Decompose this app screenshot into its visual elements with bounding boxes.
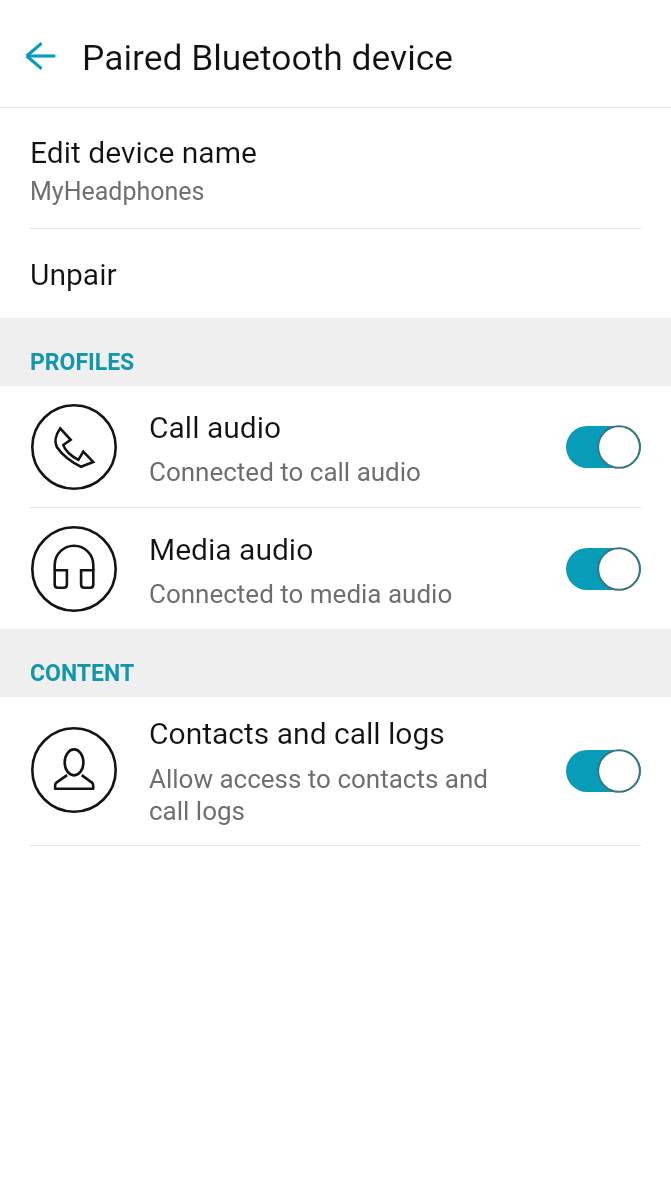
staticText: Contacts and call logs xyxy=(149,716,445,751)
staticText: CONTENT xyxy=(30,660,135,687)
staticText: Allow access to contacts and call logs xyxy=(149,764,499,827)
staticText: Connected to call audio xyxy=(149,457,609,487)
button[interactable]: Media audio xyxy=(0,508,671,629)
staticText: Connected to media audio xyxy=(149,579,609,609)
button[interactable]: Toggle setting xyxy=(566,425,641,469)
button[interactable]: Call audio xyxy=(0,386,671,507)
staticText: Edit device name xyxy=(30,135,257,170)
button[interactable]: Contacts and call logs xyxy=(0,697,671,845)
staticText: MyHeadphones xyxy=(30,177,205,206)
staticText: PROFILES xyxy=(30,349,135,376)
button[interactable]: Unpair xyxy=(0,229,671,318)
staticText: Media audio xyxy=(149,532,314,567)
staticText: Call audio xyxy=(149,410,282,445)
button[interactable]: Toggle setting xyxy=(566,749,641,793)
staticText: Paired Bluetooth device xyxy=(82,37,454,78)
button[interactable]: Edit device name xyxy=(0,108,671,228)
button[interactable]: Navigate up xyxy=(13,28,69,84)
button[interactable]: Toggle setting xyxy=(566,547,641,591)
staticText: Unpair xyxy=(30,257,117,292)
